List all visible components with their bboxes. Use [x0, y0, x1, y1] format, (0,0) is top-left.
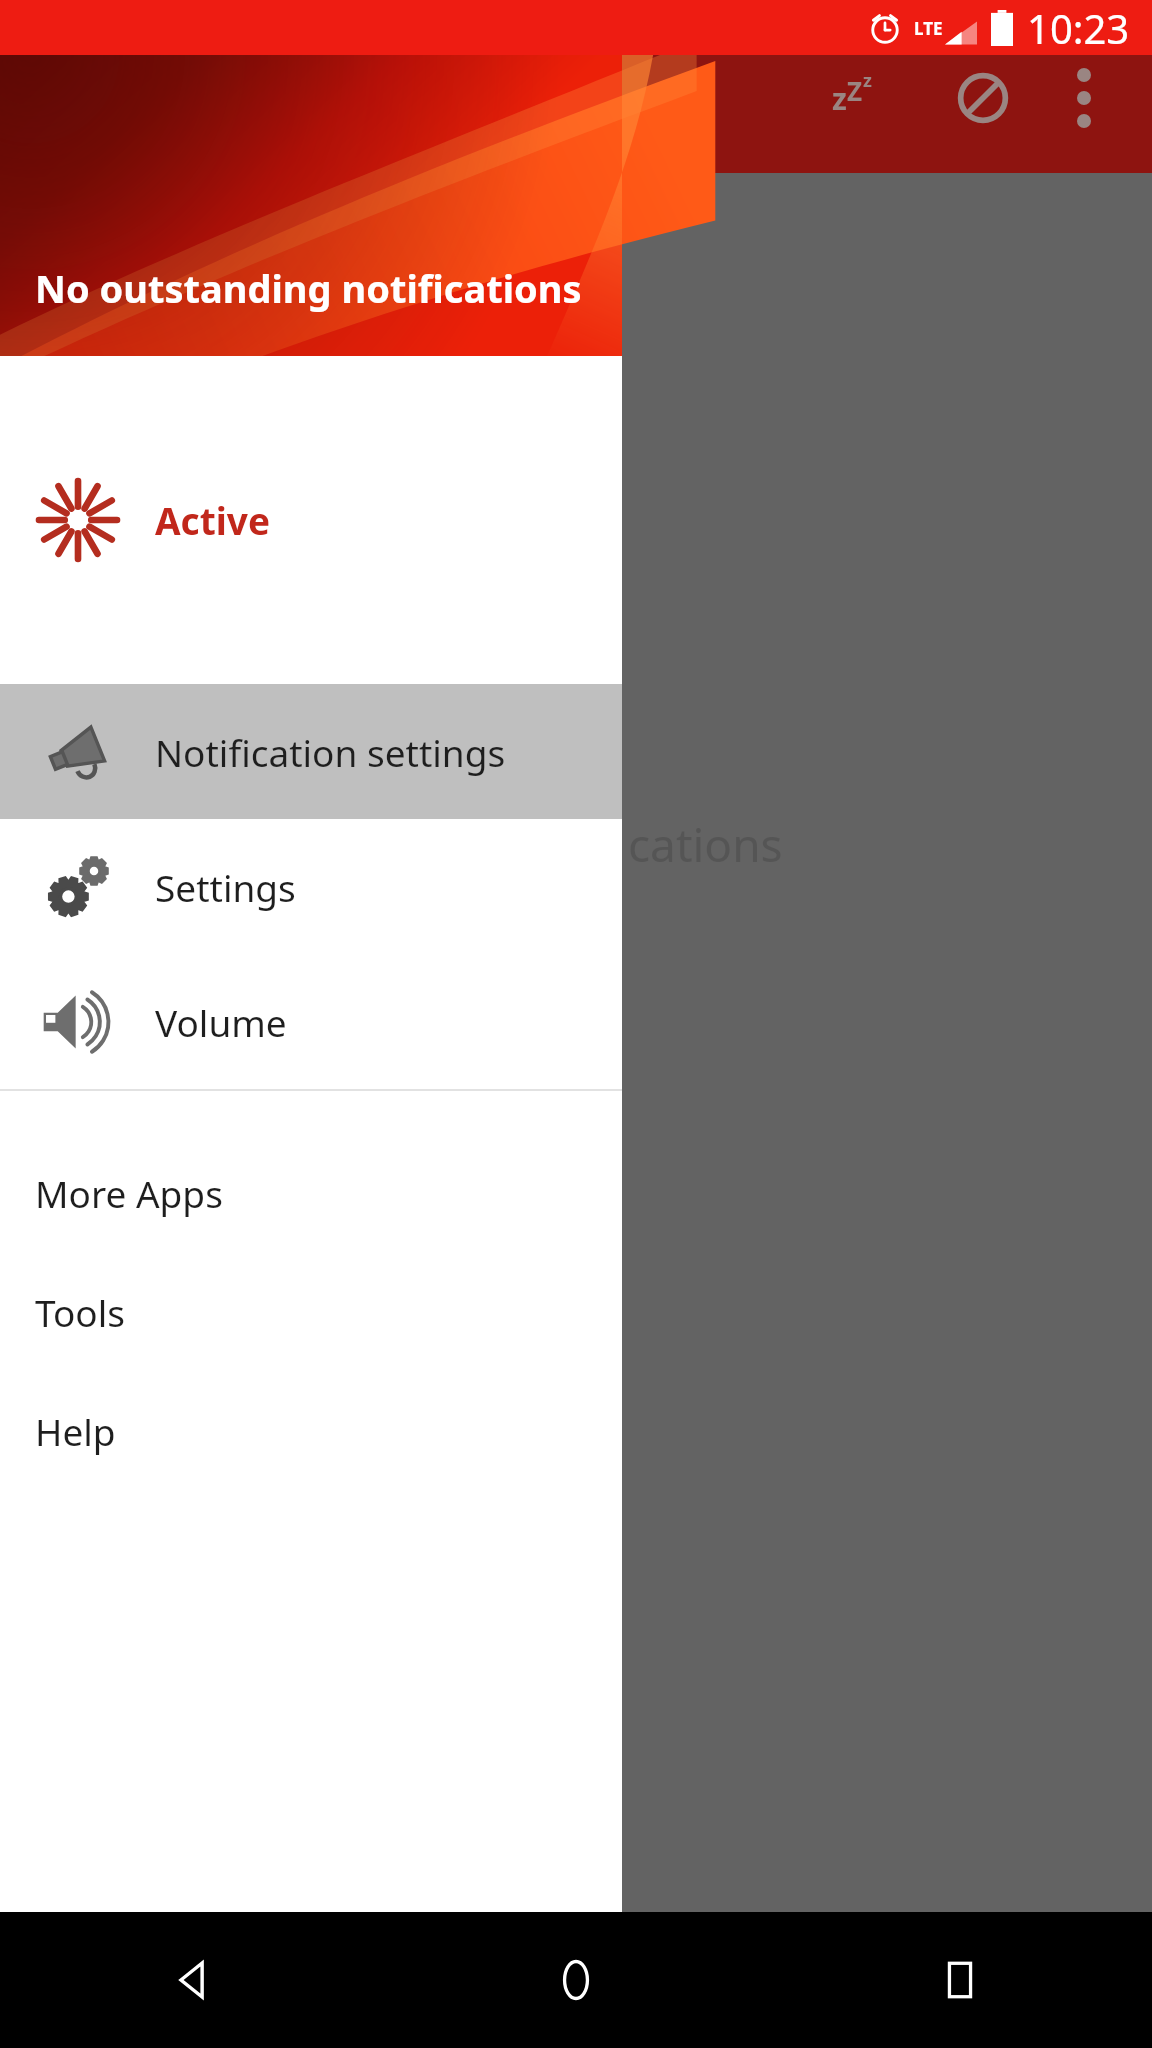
staticText: Volume — [155, 997, 287, 1047]
button[interactable]: More Apps — [0, 1133, 622, 1252]
button[interactable]: Back — [0, 1912, 384, 2048]
button[interactable]: More options — [1046, 60, 1122, 136]
staticText: Notification settings — [155, 727, 506, 777]
staticText: z — [832, 78, 847, 119]
staticText: cations — [628, 813, 783, 876]
button[interactable]: Help — [0, 1371, 622, 1490]
staticText: z — [863, 68, 872, 93]
staticText: Active — [155, 495, 271, 545]
staticText: 10:23 — [1027, 1, 1130, 55]
button[interactable]: Settings — [0, 819, 622, 954]
button[interactable]: Home — [384, 1912, 768, 2048]
staticText: Help — [35, 1406, 116, 1456]
staticText: LTE — [914, 17, 943, 40]
button[interactable]: Notification settings — [0, 684, 622, 819]
button[interactable]: Do not disturb — [940, 55, 1026, 141]
staticText: No outstanding notifications — [35, 262, 582, 314]
staticText: More Apps — [35, 1168, 223, 1218]
staticText: Z — [847, 73, 863, 108]
button[interactable]: Recent apps — [768, 1912, 1152, 2048]
staticText: Tools — [35, 1287, 126, 1337]
staticText: Settings — [155, 862, 296, 912]
button[interactable]: Volume — [0, 954, 622, 1089]
button[interactable]: Tools — [0, 1252, 622, 1371]
button[interactable]: Active — [0, 356, 622, 684]
